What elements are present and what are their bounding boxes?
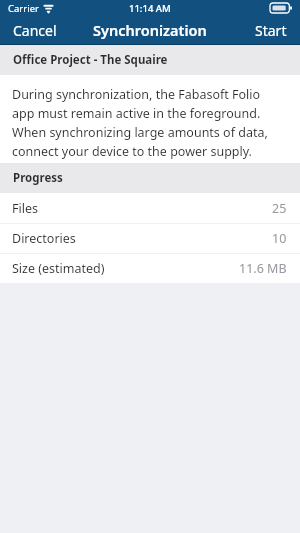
staticText: Directories — [12, 230, 76, 247]
staticText: 11:14 AM — [129, 2, 171, 15]
button[interactable]: Size (estimated) — [0, 254, 300, 283]
button[interactable]: Directories — [0, 224, 300, 253]
staticText: Progress — [13, 170, 63, 186]
staticText: Synchronization — [93, 20, 207, 40]
staticText: Files — [12, 200, 38, 217]
button[interactable]: Cancel — [0, 17, 70, 44]
staticText: Size (estimated) — [12, 260, 105, 277]
staticText: Start — [255, 21, 287, 40]
button[interactable]: Start — [242, 17, 300, 44]
staticText: Office Project - The Squaire — [13, 52, 168, 68]
staticText: 11.6 MB — [239, 260, 287, 277]
staticText: 25 — [272, 200, 287, 217]
button[interactable]: Files — [0, 193, 300, 223]
staticText: Carrier — [8, 2, 39, 15]
staticText: 10 — [272, 230, 287, 247]
staticText: During synchronization, the Fabasoft Fol… — [12, 86, 284, 159]
staticText: Cancel — [13, 21, 57, 40]
